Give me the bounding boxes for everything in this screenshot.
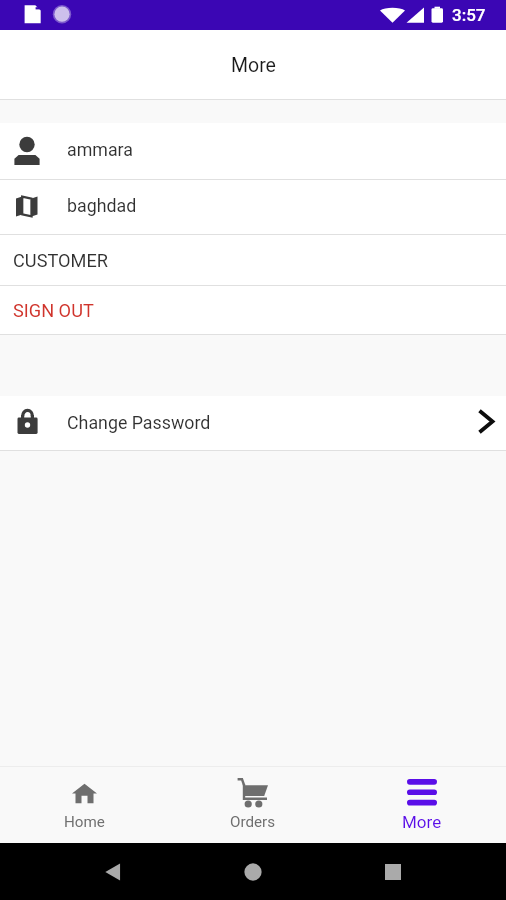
button[interactable]: baghdad [0, 180, 506, 234]
button[interactable]: ammara [0, 123, 506, 179]
staticText: Change Password [67, 412, 211, 433]
staticText: More [231, 54, 276, 77]
staticText: SIGN OUT [13, 300, 94, 321]
button[interactable]: Home [0, 766, 168, 843]
staticText: CUSTOMER [13, 250, 108, 271]
staticText: Orders [230, 813, 276, 831]
staticText: Home [64, 813, 105, 831]
staticText: ammara [67, 139, 133, 160]
staticText: baghdad [67, 195, 137, 216]
button[interactable]: Recents [363, 843, 423, 900]
staticText: More [402, 812, 442, 832]
button[interactable]: Back [83, 843, 143, 900]
button[interactable]: Change Password [0, 396, 506, 450]
button[interactable]: More [337, 766, 506, 843]
staticText: 3:57 [452, 5, 486, 25]
button[interactable]: SIGN OUT [0, 286, 506, 334]
button[interactable]: Home [223, 843, 283, 900]
button[interactable]: Orders [168, 766, 337, 843]
button[interactable]: CUSTOMER [0, 235, 506, 285]
